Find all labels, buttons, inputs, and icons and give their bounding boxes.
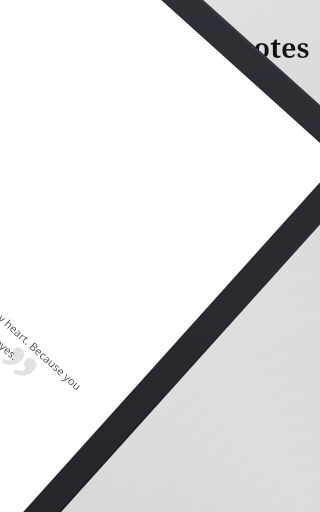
- button[interactable]: Quote tablet preview: [0, 0, 320, 512]
